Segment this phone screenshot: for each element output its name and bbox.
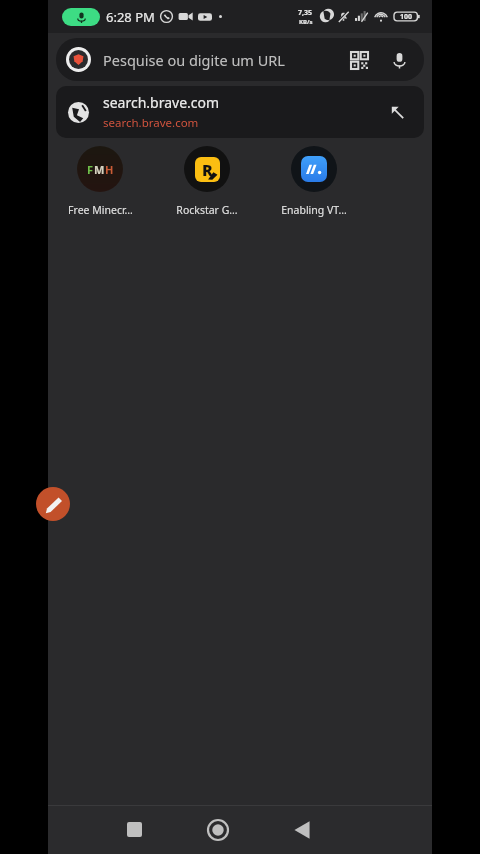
button[interactable]: R [171, 146, 243, 217]
button[interactable]: Back [274, 805, 330, 854]
button[interactable]: F [64, 146, 136, 217]
button[interactable]: Recent apps [106, 805, 162, 854]
staticText: R [202, 159, 213, 181]
button[interactable]: Brush tool [36, 487, 70, 521]
staticText: 100 [400, 12, 413, 22]
button[interactable]: Fill in suggestion [382, 97, 412, 127]
button[interactable]: Pesquise ou digite um URL [56, 38, 424, 81]
staticText: H [105, 162, 114, 177]
button[interactable]: Voice search [384, 45, 414, 75]
button[interactable]: Scan QR code [344, 45, 374, 75]
staticText: KB/s [299, 18, 313, 26]
staticText: Rockstar G… [176, 203, 238, 217]
staticText: search.brave.com [103, 93, 220, 112]
staticText: Enabling VT… [281, 203, 347, 217]
staticText: search.brave.com [103, 115, 199, 131]
button[interactable]: search.brave.com [56, 86, 424, 138]
staticText: Free Minecr… [68, 203, 133, 217]
button[interactable]: Home [190, 805, 246, 854]
staticText: Pesquise ou digite um URL [103, 50, 285, 70]
staticText: 6:28 PM [106, 8, 155, 26]
staticText: 7,35 [298, 8, 313, 18]
staticText: F [87, 162, 94, 177]
button[interactable]: Enabling VT… [278, 146, 350, 217]
staticText: M [94, 162, 105, 177]
